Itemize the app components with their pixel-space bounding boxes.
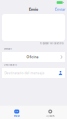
button[interactable]: Enviar [0,107,33,118]
button[interactable]: Elegir contacto [58,71,62,75]
staticText: Enviar [55,7,65,11]
staticText: Oficina [26,55,38,59]
button[interactable]: Oficina [0,52,67,62]
button[interactable]: Ajustes [33,107,67,118]
staticText: Destinatario del mensaje [4,71,44,75]
staticText: Te quedan 160 caracteres [39,42,63,45]
button[interactable]: Enviar [53,6,67,13]
staticText: Destinatario [3,63,16,66]
staticText: Mensaje [3,47,11,50]
staticText: Enviar [14,115,20,118]
staticText: Envío [29,7,38,12]
staticText: Ajustes [46,115,54,118]
